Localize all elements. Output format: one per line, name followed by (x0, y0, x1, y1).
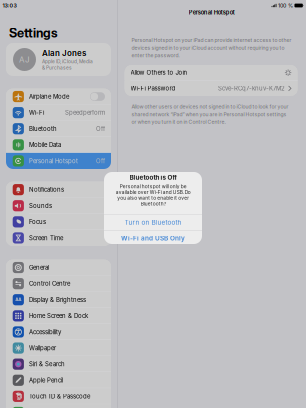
button[interactable]: Personal Hotspot (6, 153, 111, 169)
staticText: Touch ID & Passcode (29, 393, 90, 400)
button[interactable]: AA (6, 292, 111, 308)
staticText: Mobile Data (29, 141, 61, 148)
button[interactable]: Allow Others to Join (125, 65, 298, 80)
staticText: Wallpaper (29, 344, 56, 352)
staticText: Personal Hotspot (29, 157, 78, 165)
staticText: Home Screen & Dock (29, 312, 88, 319)
button[interactable]: Wallpaper (6, 340, 111, 356)
button[interactable]: Notifications (6, 182, 111, 198)
staticText: Apple ID, iCloud, Media (42, 58, 93, 64)
staticText: Wi-Fi (29, 109, 44, 116)
staticText: Speedperform (65, 109, 105, 116)
button[interactable]: Wi-Fi and USB Only (104, 230, 202, 246)
staticText: Personal Hotspot on your iPad can provid… (132, 37, 292, 59)
button[interactable]: Screen Time (6, 230, 111, 246)
staticText: Sounds (29, 202, 52, 209)
button[interactable]: Turn on Bluetooth (104, 215, 202, 230)
button[interactable]: Focus (6, 214, 111, 230)
button[interactable]: General (6, 259, 111, 276)
button[interactable]: Touch ID & Passcode (6, 388, 111, 404)
staticText: & Purchases (42, 65, 72, 71)
staticText: Siri & Search (29, 360, 65, 368)
button[interactable]: Wi-Fi (6, 105, 111, 121)
staticText: Wi-Fi Password (131, 85, 176, 92)
button[interactable]: Airplane Mode (6, 88, 111, 105)
staticText: Display & Brightness (29, 296, 86, 303)
button[interactable]: Accessibility (6, 324, 111, 340)
staticText: Alan Jones (42, 48, 86, 58)
button[interactable]: Sounds (6, 198, 111, 214)
staticText: Bluetooth (29, 125, 57, 132)
staticText: Focus (29, 218, 46, 225)
button[interactable]: AJ (6, 43, 111, 76)
staticText: General (29, 264, 49, 271)
button[interactable]: Mobile Data (6, 137, 111, 153)
button[interactable]: Battery (6, 404, 111, 408)
button[interactable]: Siri & Search (6, 356, 111, 372)
staticText: AJ (19, 55, 30, 64)
staticText: Bluetooth is Off (129, 174, 176, 181)
staticText: Off (96, 125, 105, 132)
staticText: Allow other users or devices not signed … (132, 103, 289, 125)
staticText: Screen Time (29, 234, 63, 242)
staticText: Apple Pencil (29, 377, 63, 384)
button[interactable]: Bluetooth (6, 121, 111, 137)
staticText: Off (96, 157, 105, 165)
button[interactable]: Wi-Fi Password (125, 81, 298, 96)
staticText: Accessibility (29, 328, 61, 336)
staticText: Wi-Fi and USB Only (121, 234, 185, 242)
staticText: Personal hotspot will only be available … (115, 183, 190, 207)
button[interactable]: Apple Pencil (6, 372, 111, 388)
staticText: AA (15, 297, 21, 302)
staticText: Personal Hotspot (189, 9, 235, 16)
staticText: Turn on Bluetooth (124, 219, 181, 226)
button[interactable]: Control Centre (6, 276, 111, 292)
staticText: Airplane Mode (29, 93, 69, 100)
staticText: 13:03 (2, 2, 16, 9)
staticText: Settings (9, 25, 58, 41)
staticText: Allow Others to Join (131, 69, 188, 76)
staticText: Scve-RCq7-knuv-K7M2 (218, 85, 285, 92)
staticText: Notifications (29, 186, 64, 193)
staticText: Control Centre (29, 280, 70, 287)
button[interactable]: Home Screen & Dock (6, 308, 111, 324)
staticText: 100 % (278, 2, 293, 9)
